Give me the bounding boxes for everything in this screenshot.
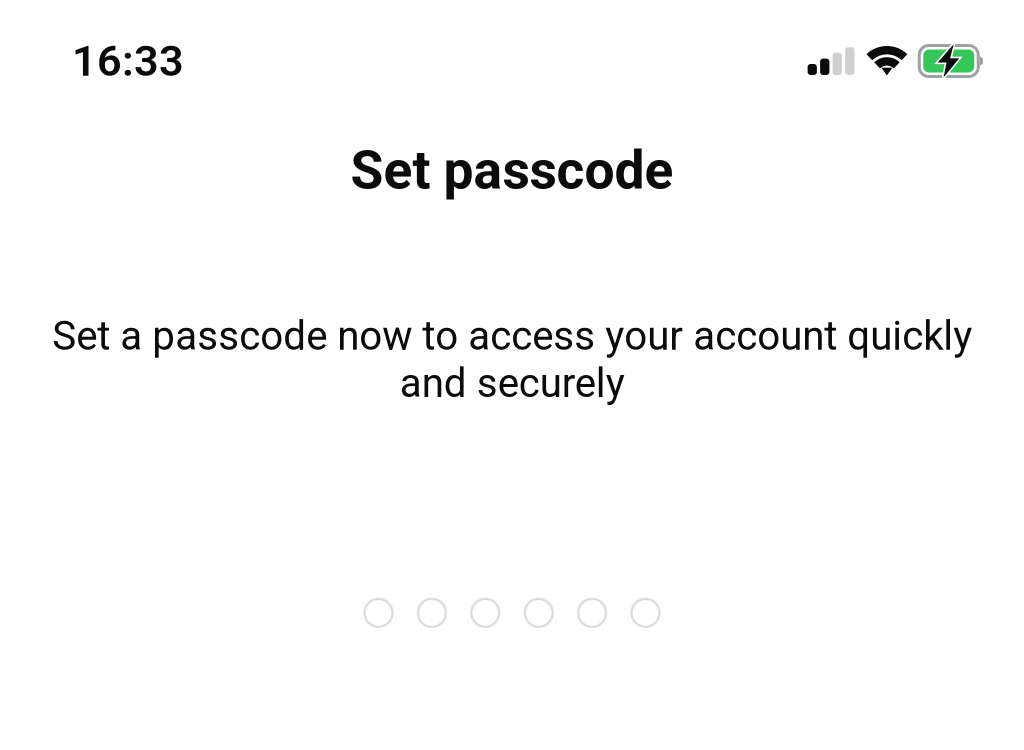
- button[interactable]: Passcode entry, 6 digits: [338, 599, 686, 627]
- staticText: Set passcode: [350, 139, 673, 201]
- staticText: 16:33: [72, 36, 184, 86]
- staticText: Set a passcode now to access your accoun…: [52, 312, 972, 407]
